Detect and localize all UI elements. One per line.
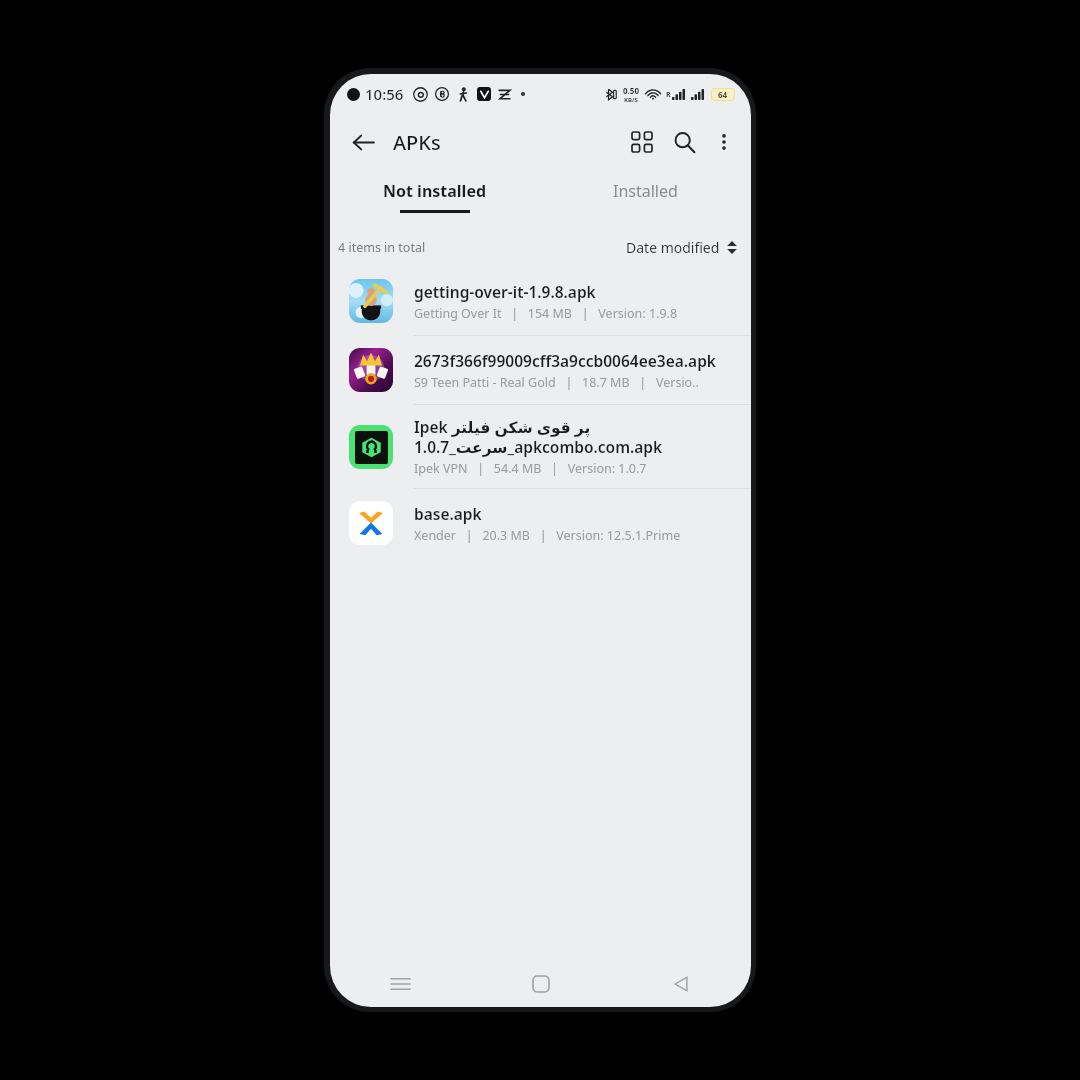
button[interactable]: Home (471, 961, 611, 1007)
staticText: Ipek VPN | 54.4 MB | Version: 1.0.7 (414, 460, 647, 477)
staticText: 4 items in total (338, 239, 426, 256)
button[interactable]: base.apk (330, 489, 751, 557)
button[interactable]: Search (663, 121, 705, 163)
staticText: S9 Teen Patti - Real Gold | 18.7 MB | Ve… (414, 374, 699, 391)
button[interactable]: Recent apps (330, 961, 471, 1007)
button[interactable]: Ipek پر قوی شکن فیلتر 1.0.7_سرعت_apkcomb… (330, 405, 751, 488)
staticText: Getting Over It | 154 MB | Version: 1.9.… (414, 305, 678, 322)
button[interactable]: Back (611, 961, 751, 1007)
staticText: 2673f366f99009cff3a9ccb0064ee3ea.apk (414, 350, 716, 371)
button[interactable]: 2673f366f99009cff3a9ccb0064ee3ea.apk (330, 336, 751, 404)
staticText: 10:56 (365, 84, 404, 104)
button[interactable]: More options (705, 123, 743, 161)
staticText: base.apk (414, 503, 482, 524)
button[interactable]: getting-over-it-1.9.8.apk (330, 267, 751, 335)
button[interactable]: Back (343, 122, 383, 162)
button[interactable]: Not installed (330, 170, 540, 222)
button[interactable]: Date modified (622, 234, 741, 261)
button[interactable]: Grid view (621, 121, 663, 163)
staticText: Ipek پر قوی شکن فیلتر 1.0.7_سرعت_apkcomb… (414, 416, 663, 457)
staticText: Date modified (626, 238, 720, 257)
staticText: getting-over-it-1.9.8.apk (414, 281, 596, 302)
staticText: APKs (393, 129, 441, 156)
staticText: KB/S (624, 96, 638, 104)
button[interactable]: Installed (540, 170, 751, 222)
staticText: 64 (718, 89, 728, 100)
staticText: Not installed (383, 180, 487, 202)
staticText: R (666, 90, 671, 100)
staticText: 0.50 (623, 85, 639, 96)
staticText: Xender | 20.3 MB | Version: 12.5.1.Prime (414, 527, 681, 544)
staticText: Installed (613, 180, 678, 202)
